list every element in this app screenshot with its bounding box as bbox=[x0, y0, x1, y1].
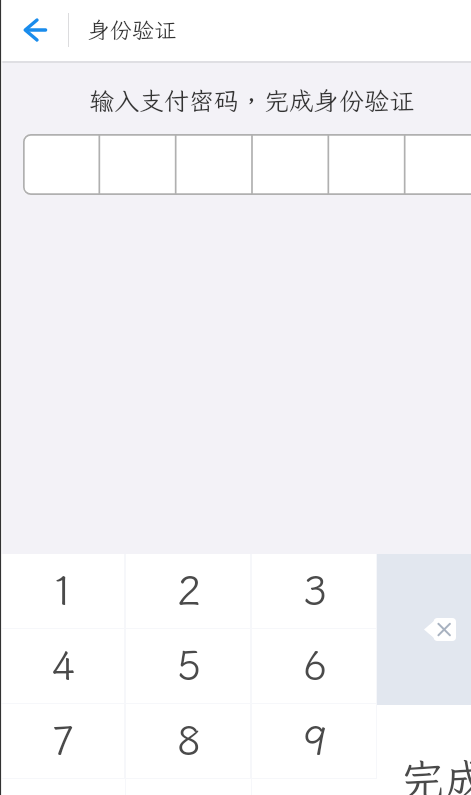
staticText: 身份验证 bbox=[88, 15, 177, 44]
staticText: 4 bbox=[51, 639, 75, 692]
staticText: 8 bbox=[177, 714, 201, 767]
staticText: 9 bbox=[303, 714, 327, 767]
button[interactable]: 1 bbox=[0, 554, 126, 629]
button[interactable]: 3 bbox=[252, 554, 378, 629]
staticText: 完成 bbox=[400, 751, 471, 795]
button[interactable]: 8 bbox=[126, 704, 252, 779]
button[interactable] bbox=[0, 779, 126, 795]
staticText: 6 bbox=[303, 639, 327, 692]
staticText: 输入支付密码，完成身份验证 bbox=[16, 84, 471, 117]
button[interactable] bbox=[0, 134, 471, 195]
staticText: 3 bbox=[303, 564, 327, 617]
button[interactable]: Backspace bbox=[377, 554, 471, 705]
button[interactable]: 2 bbox=[126, 554, 252, 629]
button[interactable]: Back bbox=[0, 0, 68, 59]
staticText: 5 bbox=[177, 639, 201, 692]
button[interactable]: 完成 bbox=[377, 705, 471, 795]
staticText: 2 bbox=[177, 564, 201, 617]
button[interactable]: 5 bbox=[126, 629, 252, 704]
staticText: 7 bbox=[51, 714, 75, 767]
button[interactable]: 4 bbox=[0, 629, 126, 704]
staticText: 1 bbox=[51, 564, 75, 617]
button[interactable]: 7 bbox=[0, 704, 126, 779]
button[interactable]: 9 bbox=[252, 704, 378, 779]
button[interactable]: 6 bbox=[252, 629, 378, 704]
